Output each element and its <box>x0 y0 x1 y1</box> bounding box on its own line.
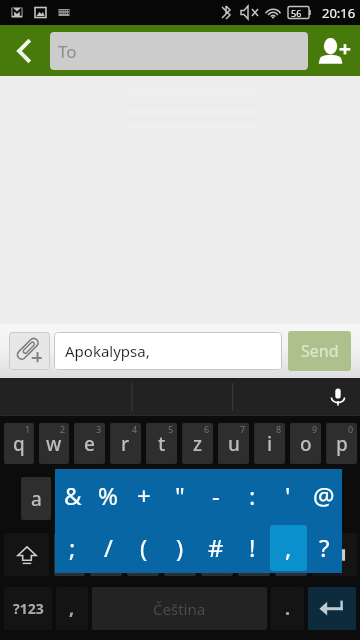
button[interactable]: u <box>218 423 249 464</box>
button[interactable]: ( <box>126 521 162 573</box>
button[interactable]: p <box>326 423 357 464</box>
button[interactable]: Back <box>0 25 50 76</box>
button[interactable]: d <box>92 477 123 520</box>
button[interactable]: & <box>55 469 90 521</box>
staticText: ; <box>69 531 76 564</box>
button[interactable]: c <box>127 533 159 576</box>
button[interactable]: s <box>56 477 87 520</box>
staticText: i <box>267 431 273 457</box>
button[interactable]: j <box>236 477 267 520</box>
button[interactable]: . <box>271 587 304 630</box>
staticText: 5 <box>168 423 174 435</box>
button[interactable]: Attach <box>9 332 50 370</box>
button[interactable]: - <box>198 469 234 521</box>
button[interactable]: w <box>39 423 69 464</box>
button[interactable]: n <box>238 533 270 576</box>
staticText: n <box>248 542 260 568</box>
staticText: z <box>193 431 203 457</box>
staticText: f <box>140 486 147 512</box>
button[interactable]: v <box>164 533 196 576</box>
button[interactable]: i <box>254 423 285 464</box>
staticText: , <box>69 596 75 621</box>
staticText: 2 <box>60 423 66 435</box>
button[interactable]: % <box>90 469 126 521</box>
button[interactable]: : <box>234 469 270 521</box>
button[interactable]: / <box>90 521 126 573</box>
button[interactable]: b <box>201 533 233 576</box>
staticText: + <box>137 479 151 512</box>
staticText: 20:16 <box>322 4 356 22</box>
staticText: 3 <box>96 423 102 435</box>
button[interactable]: @ <box>306 469 342 521</box>
button[interactable]: ; <box>55 521 90 573</box>
button[interactable]: Add contact <box>308 25 360 76</box>
staticText: ' <box>285 479 291 512</box>
button[interactable]: o <box>290 423 321 464</box>
staticText: ) <box>176 531 184 564</box>
staticText: - <box>212 479 220 512</box>
staticText: j <box>249 486 255 512</box>
staticText: q <box>13 431 25 457</box>
staticText: 9 <box>312 423 318 435</box>
button[interactable]: ?123 <box>4 587 52 630</box>
staticText: # <box>208 531 224 564</box>
staticText: ? <box>319 531 330 564</box>
button[interactable]: f <box>128 477 159 520</box>
staticText: m <box>282 542 300 568</box>
staticText: Čeština <box>153 599 206 619</box>
button[interactable]: h <box>200 477 231 520</box>
staticText: ( <box>140 531 148 564</box>
staticText: v <box>175 542 185 568</box>
staticText: % <box>98 479 118 512</box>
staticText: k <box>282 486 293 512</box>
button[interactable]: ' <box>270 469 306 521</box>
button[interactable]: t <box>146 423 177 464</box>
staticText: b <box>211 542 223 568</box>
button[interactable]: + <box>126 469 162 521</box>
button[interactable]: Shift <box>4 533 49 576</box>
staticText: t <box>158 431 166 457</box>
button[interactable]: y <box>54 533 85 576</box>
staticText: 1 <box>25 423 31 435</box>
staticText: w <box>46 431 62 457</box>
staticText: d <box>102 486 114 512</box>
button[interactable]: r <box>110 423 141 464</box>
staticText: / <box>104 531 113 564</box>
button[interactable]: k <box>272 477 303 520</box>
staticText: 7 <box>240 423 246 435</box>
button[interactable]: Backspace <box>312 533 357 576</box>
staticText: p <box>336 431 348 457</box>
staticText: e <box>84 431 95 457</box>
staticText: u <box>228 431 240 457</box>
button[interactable]: # <box>198 521 234 573</box>
button[interactable]: Enter <box>308 587 356 630</box>
button[interactable]: m <box>275 533 307 576</box>
button[interactable]: ! <box>234 521 270 573</box>
staticText: s <box>67 486 77 512</box>
button[interactable]: , <box>56 587 88 630</box>
staticText: c <box>138 542 148 568</box>
button[interactable]: l <box>308 477 339 520</box>
staticText: ?123 <box>13 599 44 618</box>
button[interactable]: e <box>74 423 105 464</box>
button[interactable]: x <box>90 533 122 576</box>
staticText: 4 <box>132 423 138 435</box>
button[interactable]: ? <box>306 521 342 573</box>
button[interactable]: " <box>162 469 198 521</box>
button[interactable]: To <box>50 32 308 70</box>
staticText: y <box>65 542 75 568</box>
staticText: , <box>285 531 292 564</box>
button[interactable]: g <box>164 477 195 520</box>
staticText: h <box>210 486 222 512</box>
staticText: " <box>175 479 185 512</box>
staticText: x <box>101 542 112 568</box>
staticText: 6 <box>204 423 210 435</box>
button[interactable]: ) <box>162 521 198 573</box>
button[interactable]: Čeština <box>92 587 267 630</box>
button[interactable]: z <box>182 423 213 464</box>
button[interactable]: , <box>270 521 306 573</box>
button[interactable]: Apokalypsa, <box>54 332 282 370</box>
button[interactable]: Send <box>288 331 351 371</box>
button[interactable]: q <box>4 423 34 464</box>
button[interactable]: a <box>21 477 51 520</box>
